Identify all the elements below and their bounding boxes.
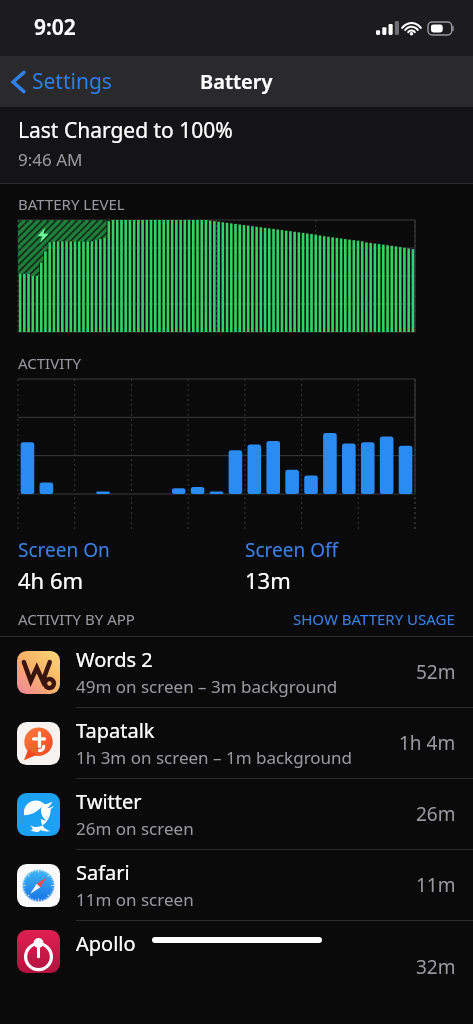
- button[interactable]: Twitter: [0, 779, 473, 849]
- staticText: 11m: [416, 872, 456, 898]
- button[interactable]: Words 2: [0, 637, 473, 707]
- staticText: Apollo: [76, 930, 136, 957]
- staticText: ACTIVITY BY APP: [18, 609, 135, 629]
- staticText: Screen On: [18, 537, 110, 563]
- staticText: 9:46 AM: [18, 148, 83, 171]
- staticText: ACTIVITY: [18, 353, 82, 373]
- staticText: SHOW BATTERY USAGE: [293, 609, 455, 629]
- staticText: Safari: [76, 859, 130, 886]
- staticText: Settings: [32, 67, 112, 96]
- staticText: Last Charged to 100%: [18, 116, 233, 145]
- staticText: 11m on screen: [76, 888, 194, 911]
- staticText: Screen Off: [245, 537, 339, 563]
- staticText: 32m: [416, 954, 456, 977]
- staticText: 4h 6m: [18, 565, 84, 595]
- staticText: Words 2: [76, 646, 153, 673]
- staticText: 52m: [416, 659, 456, 685]
- staticText: 1h 4m: [399, 730, 456, 756]
- button[interactable]: Apollo: [0, 921, 473, 977]
- button[interactable]: Tapatalk: [0, 708, 473, 778]
- staticText: Battery: [200, 68, 273, 95]
- staticText: 49m on screen – 3m background: [76, 675, 338, 698]
- button[interactable]: Settings: [6, 61, 118, 102]
- staticText: 13m: [245, 565, 291, 595]
- staticText: Tapatalk: [76, 717, 155, 744]
- staticText: 26m on screen: [76, 817, 194, 840]
- staticText: 1h 3m on screen – 1m background: [76, 746, 353, 769]
- button[interactable]: Safari: [0, 850, 473, 920]
- staticText: 9:02: [34, 13, 76, 42]
- staticText: 26m: [416, 801, 456, 827]
- staticText: Twitter: [76, 788, 142, 815]
- staticText: BATTERY LEVEL: [18, 194, 125, 214]
- button[interactable]: SHOW BATTERY USAGE: [293, 609, 455, 629]
